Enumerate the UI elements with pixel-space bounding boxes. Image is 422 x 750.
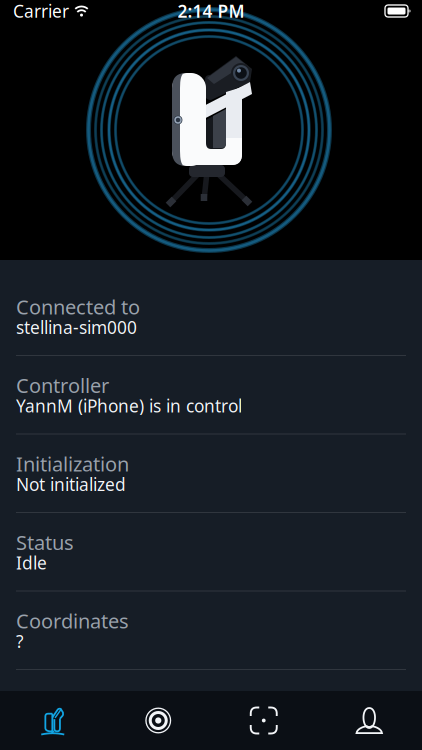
button[interactable]: Status	[0, 513, 422, 591]
button[interactable]: Observation	[105, 691, 211, 750]
staticText: Not initialized	[16, 473, 126, 496]
button[interactable]: Focus	[211, 691, 316, 750]
staticText: Initialization	[16, 450, 129, 477]
staticText: YannM (iPhone) is in control	[16, 394, 242, 417]
staticText: Status	[16, 529, 74, 556]
button[interactable]: Connected to	[0, 277, 422, 356]
button[interactable]: Telescope	[0, 691, 105, 750]
staticText: Carrier	[13, 0, 69, 22]
staticText: stellina-sim000	[16, 316, 137, 339]
staticText: Controller	[16, 372, 109, 399]
button[interactable]: Initialization	[0, 434, 422, 513]
staticText: Coordinates	[16, 607, 129, 634]
staticText: ?	[16, 630, 24, 653]
button[interactable]: Coordinates	[0, 591, 422, 670]
button[interactable]: Account	[316, 691, 422, 750]
staticText: Connected to	[16, 293, 140, 320]
staticText: 2:14 PM	[177, 0, 244, 22]
staticText: Idle	[16, 551, 47, 574]
button[interactable]: Controller	[0, 356, 422, 434]
